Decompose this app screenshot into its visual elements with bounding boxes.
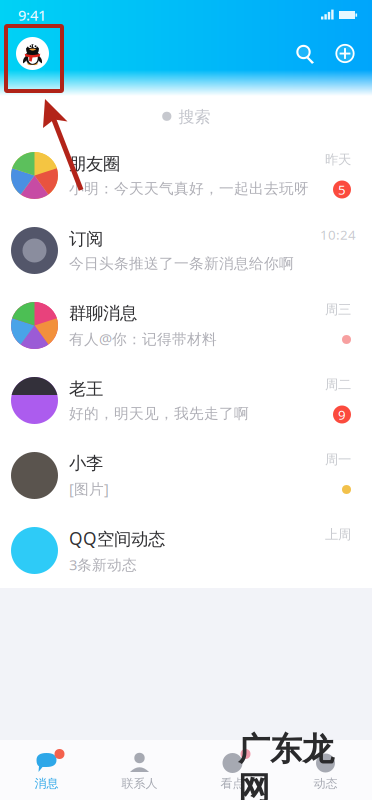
staticText: 5 bbox=[338, 181, 346, 198]
button[interactable]: Profile bbox=[16, 37, 49, 70]
button[interactable]: 动态 bbox=[279, 740, 372, 800]
staticText: 上周 bbox=[325, 526, 351, 543]
button[interactable]: 消息 bbox=[0, 740, 93, 800]
button[interactable]: 看点 bbox=[186, 740, 279, 800]
staticText: 周二 bbox=[325, 376, 351, 393]
button[interactable]: 朋友圈 bbox=[0, 138, 372, 213]
button[interactable]: QQ空间动态 bbox=[0, 513, 372, 588]
staticText: 小李 bbox=[69, 453, 103, 474]
staticText: 昨天 bbox=[325, 151, 351, 168]
staticText: 今日头条推送了一条新消息给你啊 bbox=[69, 255, 294, 273]
staticText: 动态 bbox=[313, 776, 337, 791]
staticText: 好的，明天见，我先走了啊 bbox=[69, 405, 249, 423]
button[interactable]: 订阅 bbox=[0, 213, 372, 288]
button[interactable]: 小李 bbox=[0, 438, 372, 513]
staticText: [图片] bbox=[69, 479, 109, 498]
staticText: 群聊消息 bbox=[69, 303, 137, 324]
staticText: 朋友圈 bbox=[69, 153, 120, 175]
staticText: 10:24 bbox=[320, 226, 356, 243]
staticText: 9 bbox=[338, 406, 346, 423]
staticText: 3条新动态 bbox=[69, 555, 137, 574]
button[interactable]: 老王 bbox=[0, 363, 372, 438]
staticText: QQ空间动态 bbox=[69, 527, 165, 550]
button[interactable]: Add bbox=[334, 42, 356, 64]
staticText: 看点 bbox=[220, 776, 244, 791]
staticText: 消息 bbox=[34, 776, 58, 791]
staticText: 小明：今天天气真好，一起出去玩呀 bbox=[69, 180, 309, 198]
staticText: 周一 bbox=[325, 451, 351, 468]
button[interactable]: Search bbox=[294, 42, 316, 64]
staticText: 有人@你：记得带材料 bbox=[69, 329, 217, 348]
staticText: 老王 bbox=[69, 378, 103, 400]
staticText: 搜索 bbox=[178, 107, 210, 127]
staticText: 9:41 bbox=[18, 5, 46, 25]
staticText: 广东龙网 bbox=[238, 730, 334, 800]
button[interactable]: 联系人 bbox=[93, 740, 186, 800]
button[interactable]: 群聊消息 bbox=[0, 288, 372, 363]
staticText: 周三 bbox=[325, 301, 351, 318]
staticText: 订阅 bbox=[69, 228, 103, 250]
staticText: 联系人 bbox=[121, 776, 157, 791]
button[interactable]: Search bbox=[0, 96, 372, 138]
